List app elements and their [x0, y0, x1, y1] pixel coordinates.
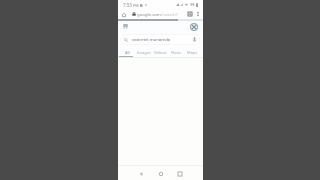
button[interactable]: Switch tabs	[186, 10, 194, 18]
button[interactable]: osterreit monareda	[121, 34, 200, 45]
button[interactable]: Back	[134, 167, 148, 180]
staticText: News	[171, 50, 182, 55]
button[interactable]: Videos	[152, 47, 168, 59]
staticText: Images	[137, 50, 151, 55]
button[interactable]: All	[119, 47, 136, 59]
staticText: Maps	[187, 50, 198, 55]
button[interactable]: More options	[194, 10, 202, 18]
button[interactable]: Recent apps	[173, 167, 187, 180]
button[interactable]: Close	[189, 22, 199, 32]
staticText: Videos	[154, 50, 167, 55]
staticText: osterreit monareda	[132, 37, 171, 43]
staticText: PM	[133, 3, 139, 8]
staticText: /search?q=osterr	[161, 11, 186, 17]
button[interactable]: Home	[154, 167, 168, 180]
button[interactable]: Images	[136, 47, 152, 59]
button[interactable]: Home	[120, 11, 127, 18]
staticText: All	[125, 50, 130, 55]
staticText: 98	[190, 2, 195, 7]
staticText: 7:53	[123, 2, 132, 8]
button[interactable]: News	[168, 47, 184, 59]
button[interactable]: Maps	[184, 47, 200, 59]
staticText: google.com	[137, 11, 161, 17]
